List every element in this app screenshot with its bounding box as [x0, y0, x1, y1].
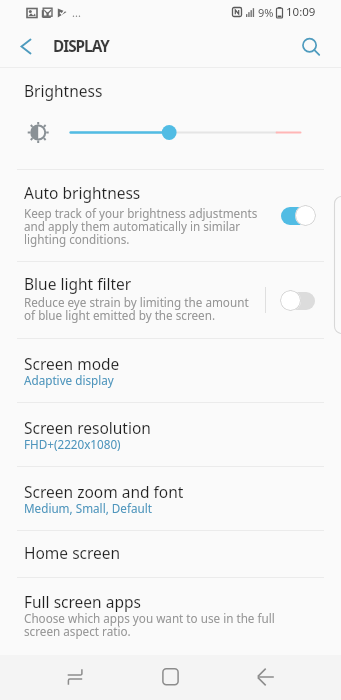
staticText: Auto brightness: [24, 182, 141, 203]
button[interactable]: Turn on: [280, 290, 317, 311]
staticText: Adaptive display: [24, 372, 114, 388]
staticText: 9%: [258, 5, 274, 20]
staticText: Screen resolution: [24, 417, 151, 438]
staticText: Choose which apps you want to use in the…: [24, 610, 275, 639]
staticText: Blue light filter: [24, 273, 132, 294]
button[interactable]: Home screen: [0, 531, 341, 577]
button[interactable]: Home: [142, 655, 199, 700]
staticText: Brightness: [24, 80, 103, 101]
button[interactable]: Blue light filter: [0, 262, 341, 338]
staticText: Full screen apps: [24, 591, 141, 612]
button[interactable]: Screen resolution: [0, 403, 341, 466]
button[interactable]: Auto brightness: [0, 170, 341, 261]
button[interactable]: Brightness: [0, 68, 341, 169]
button[interactable]: Turn off: [279, 205, 316, 226]
staticText: ...: [72, 5, 81, 20]
button[interactable]: Screen zoom and font: [0, 467, 341, 530]
staticText: Keep track of your brightness adjustment…: [24, 205, 258, 247]
button[interactable]: Recent apps: [47, 655, 104, 700]
staticText: Reduce eye strain by limiting the amount…: [24, 294, 249, 323]
button[interactable]: Screen mode: [0, 339, 341, 402]
button[interactable]: Back: [238, 655, 295, 700]
button[interactable]: Back: [5, 27, 47, 66]
button[interactable]: Full screen apps: [0, 578, 341, 646]
button[interactable]: Search: [289, 27, 333, 66]
staticText: DISPLAY: [53, 36, 109, 57]
staticText: Screen zoom and font: [24, 481, 184, 502]
staticText: Medium, Small, Default: [24, 500, 152, 516]
staticText: 10:09: [286, 4, 316, 20]
staticText: Screen mode: [24, 353, 120, 374]
staticText: Home screen: [24, 542, 121, 563]
staticText: FHD+(2220x1080): [24, 436, 121, 452]
